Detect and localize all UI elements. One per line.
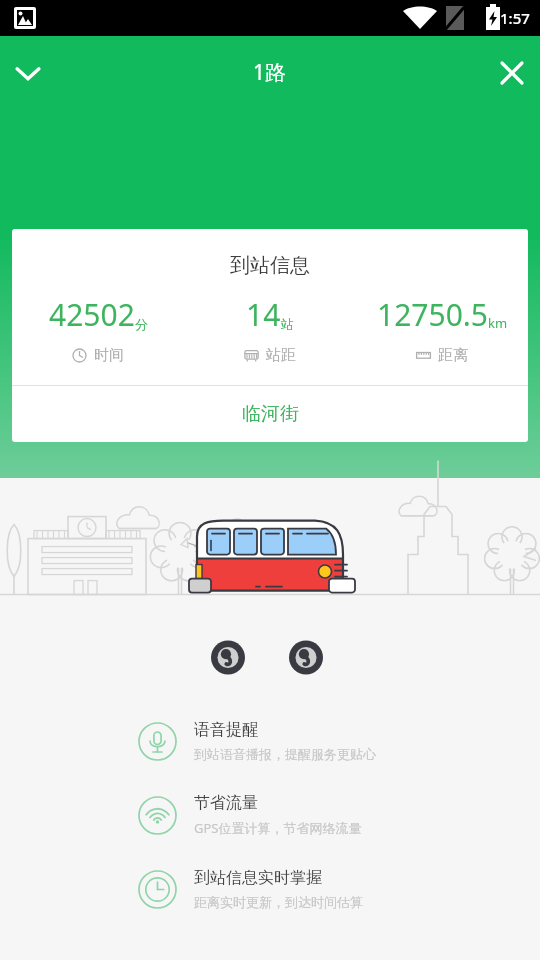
staticText: 到站信息实时掌握 — [194, 868, 322, 888]
staticText: 语音提醒 — [194, 720, 258, 740]
staticText: 1:57 — [500, 8, 530, 28]
staticText: 时间 — [94, 346, 124, 365]
staticText: GPS位置计算，节省网络流量 — [194, 819, 362, 837]
button[interactable]: 到站信息实时掌握 — [0, 852, 540, 926]
button[interactable]: 节省流量 — [0, 778, 540, 852]
staticText: 12750.5 — [377, 294, 488, 335]
staticText: 距离实时更新，到达时间估算 — [194, 894, 363, 910]
staticText: 分 — [135, 316, 148, 332]
staticText: 节省流量 — [194, 793, 258, 813]
button[interactable]: Close — [484, 45, 540, 101]
staticText: 14 — [246, 294, 281, 335]
staticText: km — [488, 314, 508, 332]
staticText: 临河街 — [242, 402, 299, 426]
button[interactable]: 临河街 — [12, 386, 528, 442]
staticText: 到站信息 — [12, 253, 528, 278]
staticText: 42502 — [49, 294, 135, 335]
staticText: 站距 — [266, 346, 296, 365]
staticText: 站 — [281, 316, 294, 332]
staticText: 到站语音播报，提醒服务更贴心 — [194, 746, 376, 762]
staticText: 1路 — [253, 58, 287, 87]
button[interactable]: 语音提醒 — [0, 704, 540, 778]
button[interactable]: Collapse — [0, 45, 56, 101]
staticText: 距离 — [438, 346, 468, 365]
